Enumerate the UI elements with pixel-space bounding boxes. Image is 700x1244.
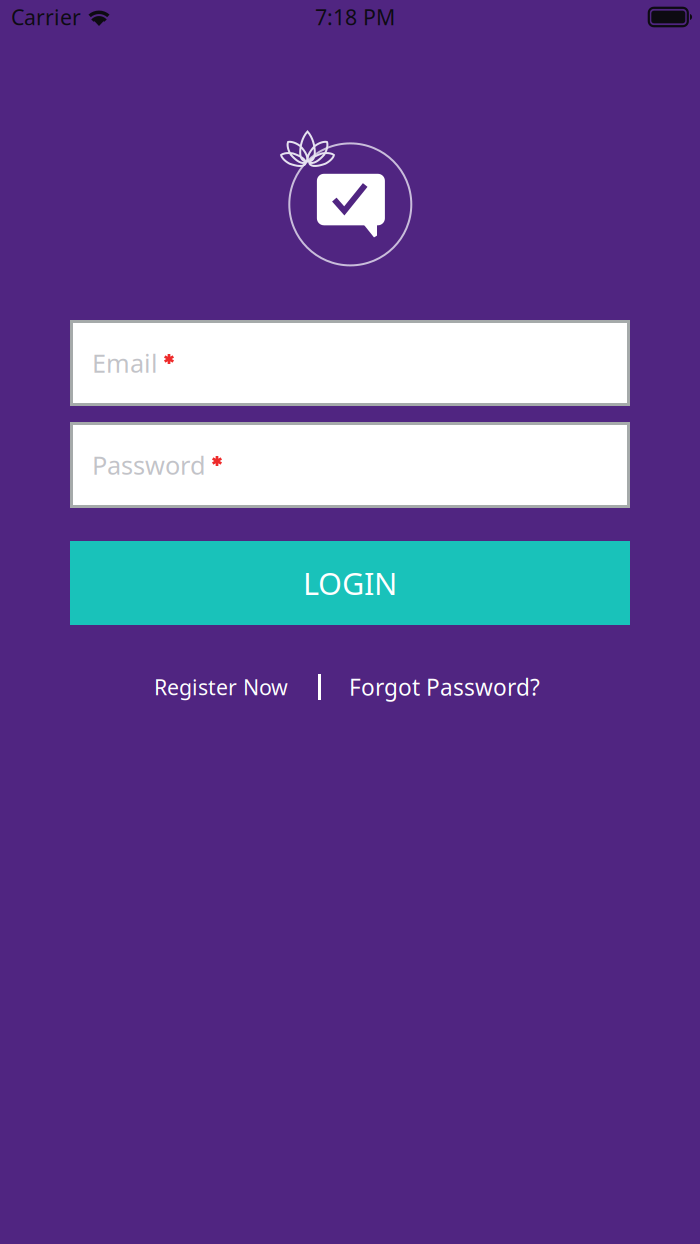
- button[interactable]: Forgot Password?: [349, 667, 540, 707]
- staticText: Register Now: [154, 673, 288, 701]
- staticText: Carrier: [11, 3, 81, 31]
- staticText: Forgot Password?: [349, 672, 540, 702]
- staticText: Password: [92, 448, 206, 482]
- staticText: LOGIN: [303, 563, 397, 603]
- button[interactable]: LOGIN: [70, 541, 630, 625]
- staticText: Email: [92, 346, 158, 380]
- button[interactable]: Register Now: [154, 667, 288, 707]
- staticText: 7:18 PM: [315, 3, 395, 31]
